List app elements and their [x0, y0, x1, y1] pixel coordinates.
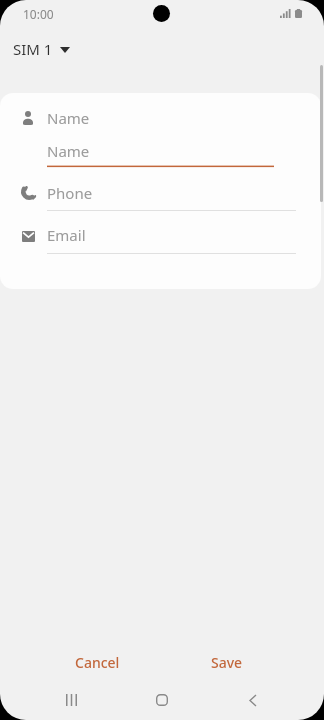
button[interactable]: Save	[190, 645, 263, 679]
staticText: SIM 1	[13, 39, 53, 59]
button[interactable]: Back	[235, 682, 271, 718]
staticText: 10:00	[23, 6, 54, 22]
button[interactable]: Recent apps	[53, 682, 89, 718]
staticText: Phone	[47, 183, 93, 203]
staticText: Name	[47, 108, 90, 128]
staticText: Save	[211, 653, 243, 672]
button[interactable]: Home	[144, 682, 180, 718]
button[interactable]: SIM 1	[5, 34, 78, 64]
staticText: Name	[47, 141, 90, 161]
button[interactable]: Cancel	[61, 645, 134, 679]
staticText: Email	[47, 225, 86, 245]
staticText: Cancel	[75, 653, 120, 672]
